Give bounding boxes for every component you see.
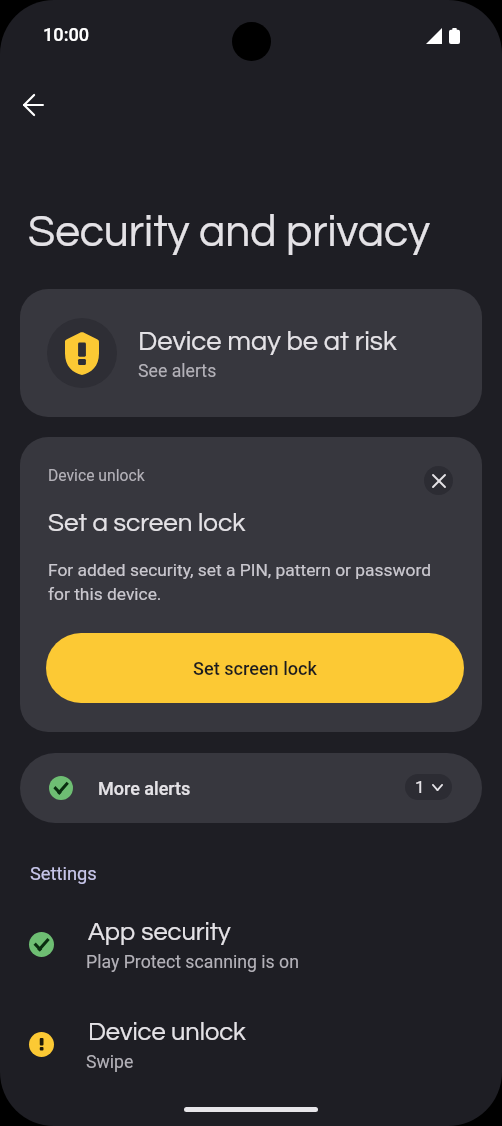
staticText: Settings [30, 863, 97, 884]
staticText: Play Protect scanning is on [86, 952, 299, 973]
staticText: Security and privacy [28, 210, 430, 256]
staticText: 1 [415, 777, 425, 797]
button[interactable]: More alerts [20, 753, 482, 823]
staticText: For added security, set a PIN, pattern o… [48, 560, 438, 604]
staticText: More alerts [98, 778, 191, 799]
button[interactable]: Set screen lock [46, 633, 464, 703]
staticText: Device unlock [48, 466, 145, 484]
button[interactable]: App security [0, 916, 502, 1000]
button[interactable]: Device may be at risk [20, 289, 482, 417]
staticText: See alerts [138, 361, 217, 382]
staticText: App security [88, 919, 231, 945]
button[interactable]: Back [10, 81, 57, 128]
staticText: 10:00 [43, 24, 90, 45]
staticText: Set screen lock [193, 658, 318, 679]
staticText: Device may be at risk [138, 328, 397, 356]
staticText: Device unlock [88, 1019, 246, 1045]
button[interactable]: Dismiss [424, 466, 453, 495]
staticText: Set a screen lock [48, 510, 246, 537]
staticText: Swipe [86, 1052, 134, 1073]
button[interactable]: Device unlock [0, 1016, 502, 1100]
